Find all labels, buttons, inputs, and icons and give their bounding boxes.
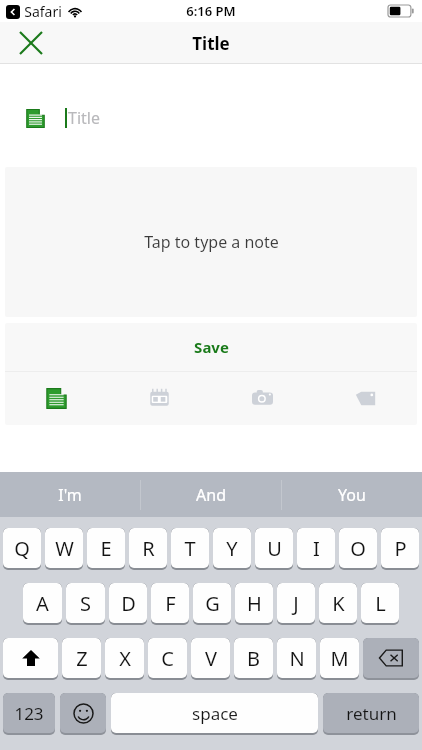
staticText: P <box>394 535 407 562</box>
staticText: I <box>313 535 320 562</box>
button[interactable]: J <box>277 583 315 623</box>
button[interactable]: return <box>323 693 419 733</box>
button[interactable]: Y <box>213 528 251 568</box>
staticText: You <box>338 484 366 506</box>
button[interactable]: Close <box>12 24 50 62</box>
staticText: And <box>196 484 226 506</box>
button[interactable]: You <box>282 472 422 517</box>
button[interactable]: V <box>191 638 230 678</box>
staticText: Q <box>14 535 30 562</box>
button[interactable]: Emoji <box>60 693 106 733</box>
staticText: H <box>247 590 262 617</box>
button[interactable]: L <box>361 583 399 623</box>
staticText: Z <box>76 645 88 672</box>
button[interactable]: D <box>109 583 147 623</box>
button[interactable]: Save <box>5 323 417 371</box>
button[interactable]: S <box>66 583 105 623</box>
staticText: space <box>192 702 238 725</box>
button[interactable]: Tag <box>314 372 417 425</box>
staticText: Y <box>226 535 238 562</box>
button[interactable]: A <box>23 583 62 623</box>
button[interactable]: K <box>319 583 357 623</box>
staticText: R <box>142 535 155 562</box>
button[interactable]: Tap to type a note <box>5 167 417 317</box>
staticText: W <box>55 535 74 562</box>
button[interactable]: P <box>381 528 419 568</box>
staticText: B <box>247 645 260 672</box>
button[interactable]: F <box>151 583 189 623</box>
button[interactable]: M <box>320 638 359 678</box>
button[interactable]: I'm <box>0 472 140 517</box>
staticText: X <box>119 645 131 672</box>
button[interactable]: E <box>87 528 125 568</box>
button[interactable]: G <box>193 583 231 623</box>
staticText: M <box>330 645 349 672</box>
staticText: L <box>375 590 386 617</box>
staticText: 123 <box>14 702 44 725</box>
staticText: I'm <box>58 484 82 506</box>
button[interactable]: And <box>141 472 281 517</box>
staticText: V <box>205 645 217 672</box>
staticText: Save <box>194 337 229 357</box>
staticText: K <box>332 590 345 617</box>
staticText: S <box>80 590 91 617</box>
staticText: return <box>346 702 397 725</box>
staticText: G <box>205 590 220 617</box>
button[interactable]: space <box>111 693 318 733</box>
button[interactable]: 123 <box>3 693 55 733</box>
staticText: N <box>289 645 305 672</box>
button[interactable]: B <box>234 638 273 678</box>
staticText: U <box>267 535 282 562</box>
staticText: Title <box>68 107 100 129</box>
button[interactable]: Calendar <box>108 372 211 425</box>
staticText: D <box>121 590 136 617</box>
staticText: T <box>184 535 196 562</box>
button[interactable]: I <box>297 528 335 568</box>
staticText: F <box>165 590 176 617</box>
button[interactable]: Backspace <box>363 638 419 678</box>
button[interactable]: R <box>129 528 167 568</box>
staticText: C <box>161 645 174 672</box>
button[interactable]: U <box>255 528 293 568</box>
button[interactable]: Q <box>3 528 41 568</box>
button[interactable]: X <box>105 638 144 678</box>
button[interactable]: H <box>235 583 273 623</box>
button[interactable]: O <box>339 528 377 568</box>
button[interactable]: Title <box>0 101 422 135</box>
button[interactable]: Camera <box>211 372 314 425</box>
staticText: J <box>293 590 299 617</box>
staticText: Safari <box>24 2 62 21</box>
button[interactable]: Shift <box>3 638 58 678</box>
staticText: A <box>36 590 49 617</box>
button[interactable]: N <box>277 638 316 678</box>
staticText: 6:16 PM <box>186 2 236 20</box>
button[interactable]: W <box>45 528 83 568</box>
staticText: Title <box>192 32 230 55</box>
button[interactable]: C <box>148 638 187 678</box>
staticText: Tap to type a note <box>144 231 279 253</box>
staticText: O <box>350 535 366 562</box>
button[interactable]: Z <box>62 638 101 678</box>
staticText: E <box>100 535 112 562</box>
button[interactable]: T <box>171 528 209 568</box>
button[interactable]: Note <box>5 372 108 425</box>
